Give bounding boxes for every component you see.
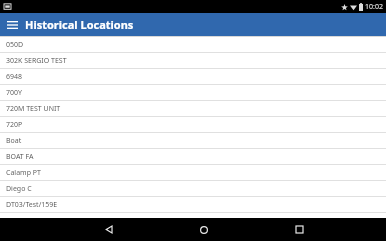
staticText: 10:02 (365, 2, 383, 12)
button[interactable]: Recent apps (279, 218, 319, 241)
staticText: 720M TEST UNIT (6, 104, 61, 114)
staticText: 720P (6, 120, 23, 130)
button[interactable]: 302K SERGIO TEST (0, 53, 386, 68)
button[interactable]: Back (89, 218, 129, 241)
staticText: Historical Locations (25, 17, 134, 32)
staticText: Diego C (6, 184, 32, 194)
button[interactable]: 700Y (0, 85, 386, 100)
button[interactable]: BOAT FA (0, 149, 386, 164)
staticText: 050D (6, 40, 24, 50)
button[interactable]: Home (184, 218, 224, 241)
button[interactable]: Calamp PT (0, 165, 386, 180)
button[interactable]: 720M TEST UNIT (0, 101, 386, 116)
button[interactable]: DT03/Test/159E (0, 197, 386, 212)
staticText: BOAT FA (6, 152, 34, 162)
button[interactable]: Boat (0, 133, 386, 148)
staticText: Boat (6, 136, 22, 146)
staticText: Calamp PT (6, 168, 41, 178)
staticText: 6948 (6, 72, 23, 82)
staticText: DT03/Test/159E (6, 200, 58, 210)
button[interactable]: Diego C (0, 181, 386, 196)
button[interactable]: 6948 (0, 69, 386, 84)
staticText: 302K SERGIO TEST (6, 56, 67, 66)
button[interactable]: Open navigation drawer (4, 17, 20, 33)
button[interactable]: 720P (0, 117, 386, 132)
button[interactable]: 050D (0, 37, 386, 52)
staticText: 700Y (6, 88, 22, 98)
